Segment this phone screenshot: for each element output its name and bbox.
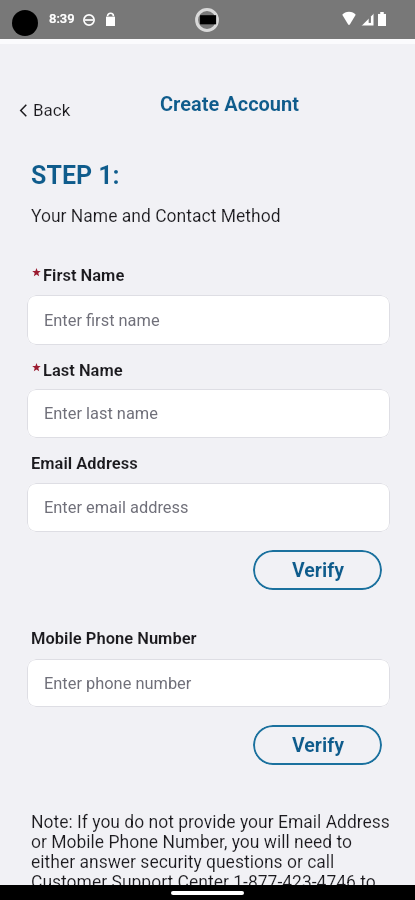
staticText: Create Account — [160, 92, 300, 115]
staticText: STEP 1: — [31, 161, 120, 190]
staticText: Enter phone number — [44, 674, 192, 693]
staticText: Verify — [292, 559, 344, 582]
staticText: Back — [33, 100, 71, 120]
staticText: Last Name — [43, 361, 123, 380]
staticText: Note: If you do not provide your Email A… — [31, 812, 390, 900]
staticText: First Name — [43, 266, 125, 285]
button[interactable]: Verify — [253, 725, 382, 765]
staticText: Email Address — [31, 454, 138, 473]
staticText: Mobile Phone Number — [31, 629, 197, 648]
button[interactable]: Back — [13, 94, 78, 126]
staticText: Enter first name — [44, 311, 160, 330]
button[interactable]: Verify — [253, 550, 382, 590]
button[interactable]: Home — [0, 885, 415, 900]
staticText: 8:39 — [49, 11, 75, 26]
staticText: Enter last name — [44, 404, 158, 423]
staticText: Enter email address — [44, 498, 189, 517]
button[interactable]: Enter last name — [27, 389, 390, 438]
button[interactable]: Enter email address — [27, 483, 390, 532]
staticText: Verify — [292, 734, 344, 757]
staticText: Your Name and Contact Method — [31, 206, 281, 227]
button[interactable]: Enter first name — [27, 295, 390, 345]
button[interactable]: Enter phone number — [27, 659, 390, 707]
